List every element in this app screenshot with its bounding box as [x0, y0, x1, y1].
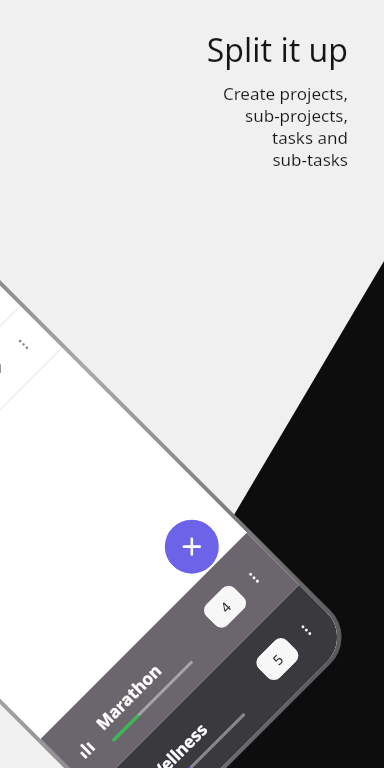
staticText: Marathon — [91, 659, 166, 735]
button[interactable]: More options — [236, 559, 272, 596]
staticText: Wellness — [143, 718, 212, 768]
button[interactable]: Marathon — [40, 532, 299, 768]
button[interactable]: More options — [0, 264, 20, 512]
staticText: Create projects, sub-projects, tasks and… — [118, 82, 348, 171]
staticText: Split it up — [118, 28, 348, 72]
button[interactable]: More options — [8, 329, 39, 360]
button[interactable]: 4 — [200, 582, 250, 631]
button[interactable]: 5 — [253, 634, 302, 684]
button[interactable]: Close — [154, 508, 230, 585]
button[interactable]: More options — [0, 306, 62, 554]
staticText: 4 — [216, 597, 236, 617]
button[interactable]: More options — [288, 612, 325, 648]
button[interactable]: Wellness — [93, 585, 352, 768]
staticText: 5 — [268, 649, 288, 669]
